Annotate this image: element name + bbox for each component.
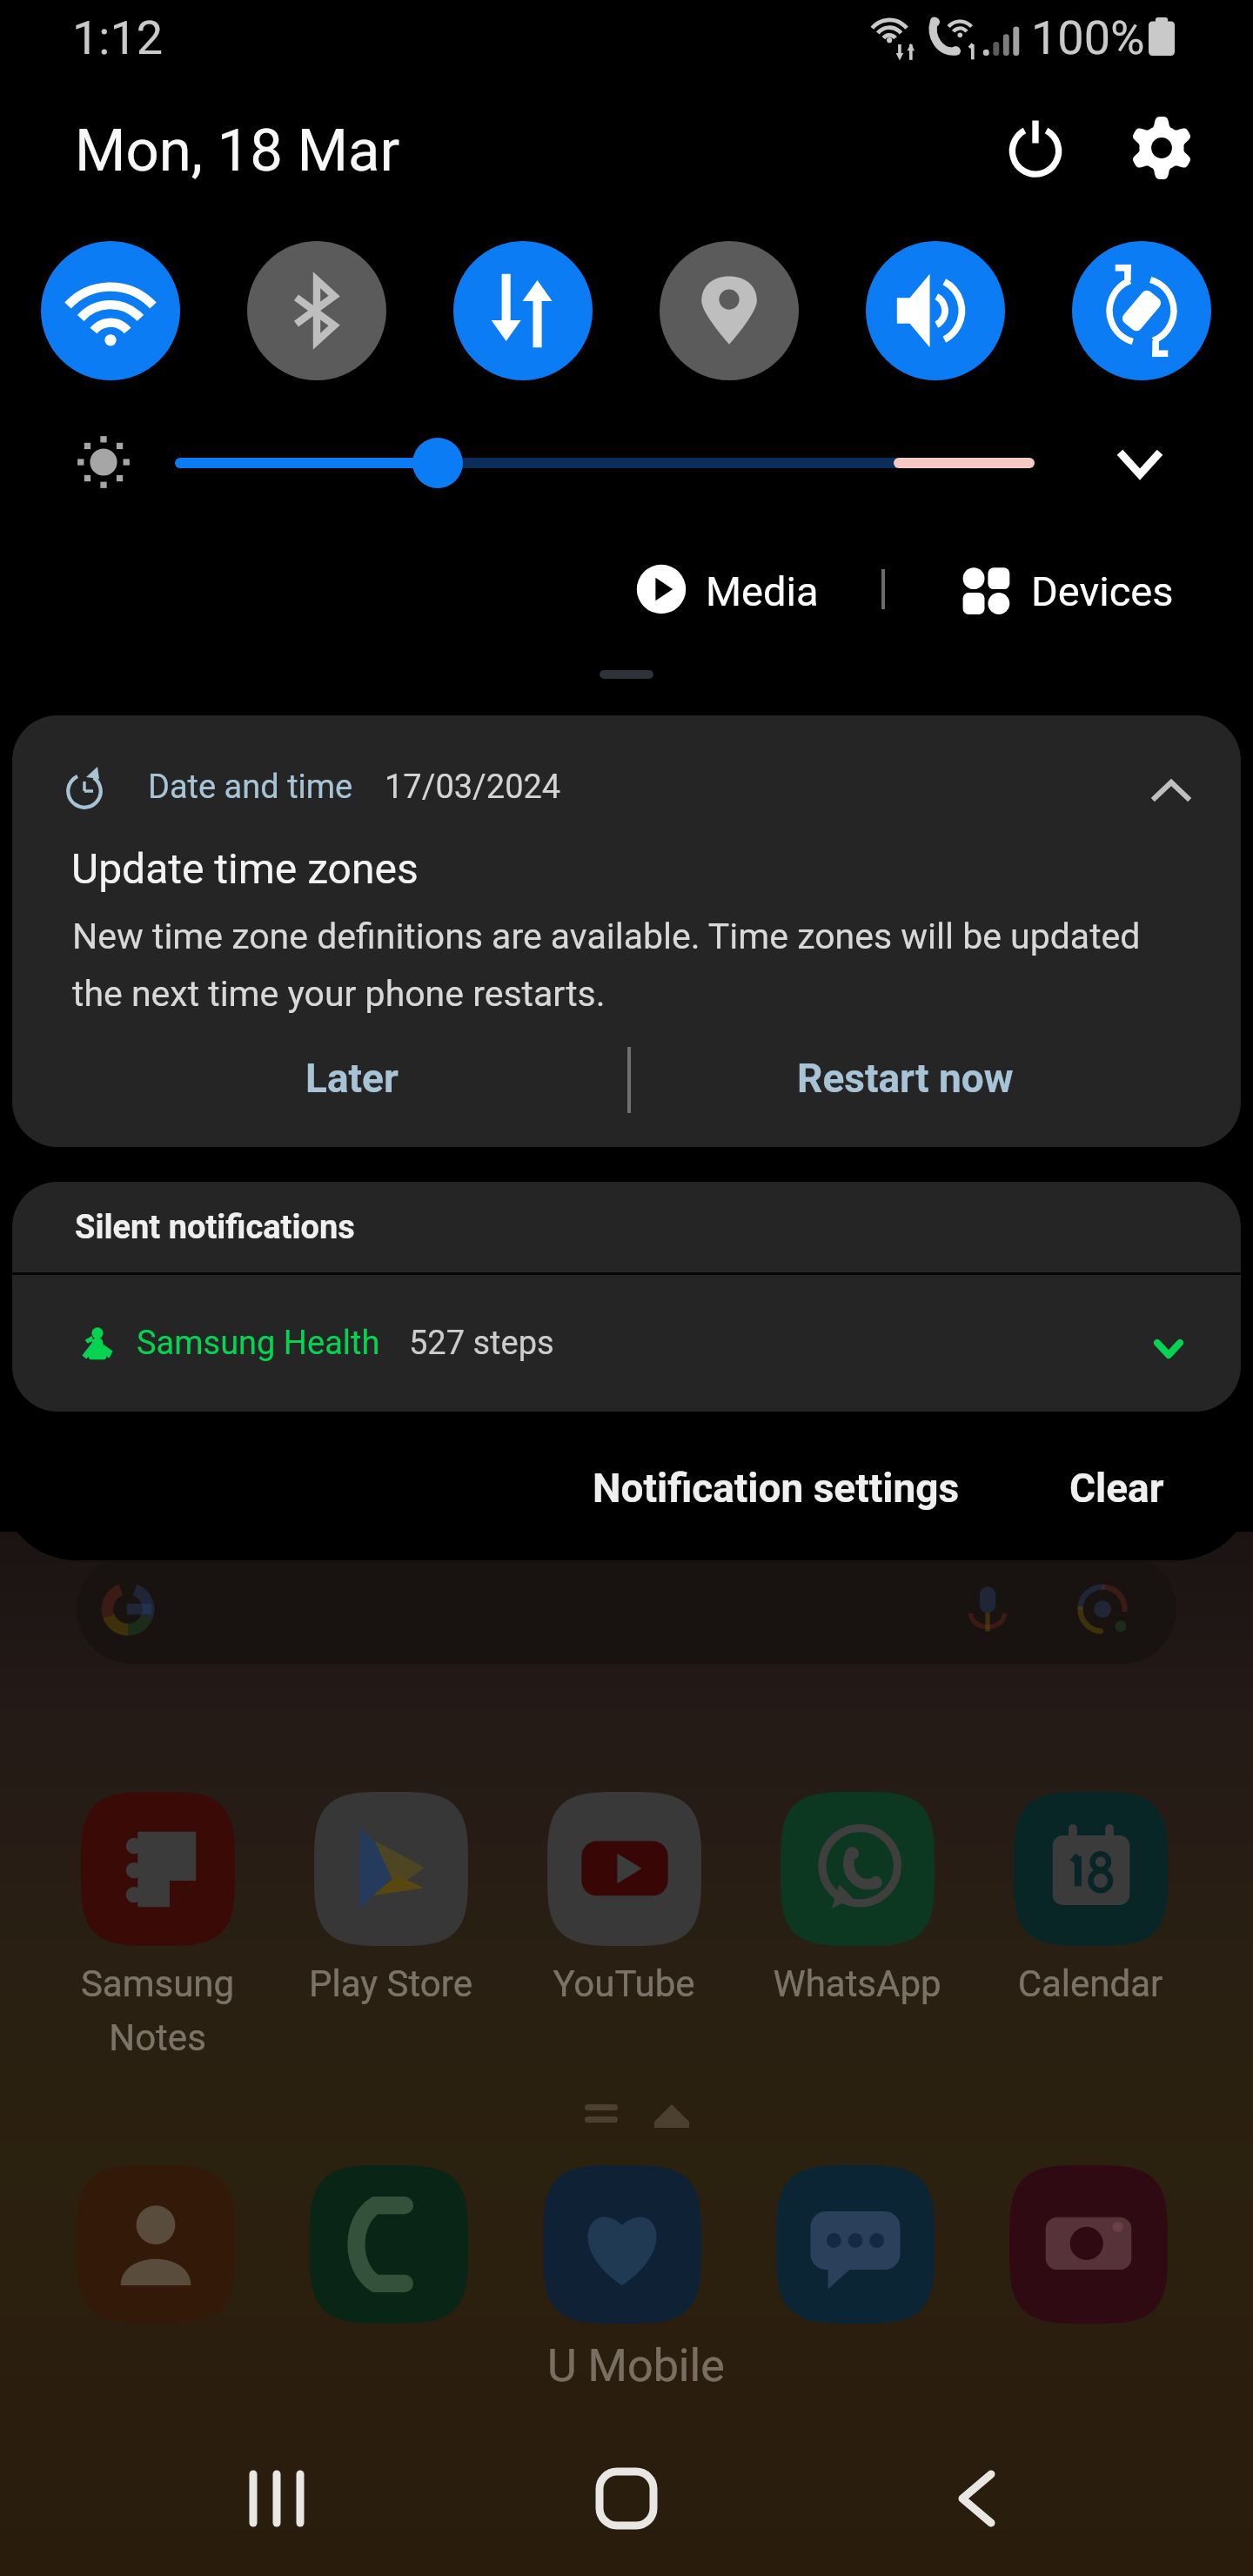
staticText: Mon, 18 Mar [75, 117, 400, 185]
staticText: WhatsApp [740, 1962, 975, 2005]
staticText: Devices [1031, 567, 1174, 615]
staticText: Later [305, 1055, 399, 1102]
button[interactable]: Clear [1046, 1443, 1187, 1533]
button[interactable]: Notification settings [570, 1443, 982, 1533]
button[interactable]: Search [77, 1554, 1176, 1664]
button[interactable]: WhatsApp [781, 1792, 935, 1946]
staticText: Restart now [797, 1055, 1014, 1102]
button[interactable]: Settings [1116, 103, 1207, 193]
staticText: Play Store [273, 1962, 508, 2005]
button[interactable]: Phone [310, 2165, 468, 2324]
button[interactable]: Samsung Health [12, 1275, 1241, 1412]
button[interactable]: Messages [776, 2165, 935, 2324]
button[interactable]: Recents [216, 2438, 338, 2559]
button[interactable]: Expand quick settings [1095, 419, 1185, 510]
staticText: 527 steps [409, 1324, 554, 1363]
staticText: Clear [1069, 1465, 1164, 1512]
button[interactable]: Date and time [12, 715, 1241, 1147]
staticText: YouTube [506, 1962, 741, 2005]
staticText: New time zone definitions are available.… [72, 916, 1141, 1015]
button[interactable]: YouTube [547, 1792, 701, 1946]
button[interactable]: Play Store [314, 1792, 468, 1946]
button[interactable]: Home [566, 2438, 687, 2559]
staticText: Calendar [973, 1962, 1208, 2005]
button[interactable]: Power off [990, 103, 1081, 193]
button[interactable]: Silent notifications [12, 1182, 1241, 1272]
button[interactable]: Auto rotate [1072, 241, 1211, 380]
staticText: Date and time [148, 768, 353, 807]
staticText: U Mobile [547, 2339, 725, 2392]
button[interactable]: Later [50, 1031, 653, 1125]
staticText: Samsung Health [137, 1324, 380, 1363]
button[interactable]: Restart now [644, 1031, 1166, 1125]
button[interactable]: MySejahtera [543, 2165, 701, 2324]
staticText: 1:12 [72, 10, 164, 65]
button[interactable]: Back [915, 2438, 1037, 2559]
staticText: 100% [1031, 10, 1145, 65]
button[interactable]: Wi-Fi [41, 241, 180, 380]
button[interactable]: Calendar [1014, 1792, 1168, 1946]
staticText: Samsung Notes [40, 1962, 275, 2059]
button[interactable]: Contacts [77, 2165, 235, 2324]
staticText: 17/03/2024 [385, 768, 561, 807]
button[interactable]: Mobile data [453, 241, 593, 380]
staticText: Media [706, 567, 819, 615]
staticText: Notification settings [593, 1465, 960, 1512]
button[interactable]: Collapse notification [1128, 747, 1215, 834]
button[interactable]: Location [660, 241, 799, 380]
button[interactable]: Sound [866, 241, 1005, 380]
button[interactable]: Samsung Notes [81, 1792, 235, 1946]
staticText: Update time zones [71, 844, 419, 893]
button[interactable]: Bluetooth [247, 241, 386, 380]
button[interactable]: Media [614, 549, 832, 629]
staticText: Silent notifications [75, 1208, 355, 1247]
button[interactable]: Devices [940, 549, 1201, 629]
button[interactable]: Camera [1009, 2165, 1168, 2324]
